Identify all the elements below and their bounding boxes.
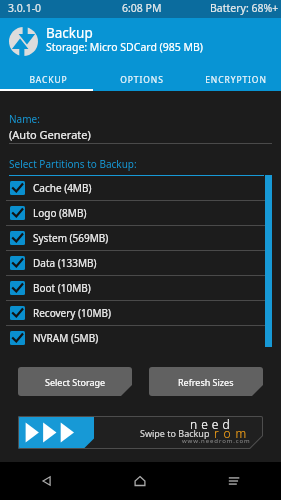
button[interactable]: Boot (10MB) bbox=[0, 276, 281, 301]
staticText: Storage: Micro SDCard (985 MB) bbox=[46, 40, 203, 54]
button[interactable]: ENCRYPTION bbox=[187, 68, 281, 91]
staticText: Logo (8MB) bbox=[33, 206, 87, 220]
button[interactable]: Swipe to Backup bbox=[18, 416, 263, 449]
staticText: Select Partitions to Backup: bbox=[9, 157, 137, 171]
staticText: OPTIONS bbox=[120, 74, 164, 86]
button[interactable]: Back bbox=[0, 462, 93, 500]
button[interactable]: Logo (8MB) bbox=[0, 201, 281, 226]
staticText: ENCRYPTION bbox=[205, 74, 267, 86]
button[interactable]: Home bbox=[93, 462, 187, 500]
staticText: Select Storage bbox=[45, 376, 106, 388]
button[interactable]: OPTIONS bbox=[93, 68, 187, 91]
button[interactable]: Cache (4MB) bbox=[0, 176, 281, 201]
staticText: BACKUP bbox=[29, 74, 68, 86]
button[interactable]: Recents bbox=[187, 462, 281, 500]
button[interactable]: Select Storage bbox=[18, 367, 132, 396]
staticText: Recovery (10MB) bbox=[33, 306, 112, 320]
button[interactable]: Recovery (10MB) bbox=[0, 301, 281, 326]
staticText: 6:08 PM bbox=[122, 1, 162, 15]
button[interactable]: Data (133MB) bbox=[0, 251, 281, 276]
staticText: Name: bbox=[9, 112, 40, 126]
staticText: rom bbox=[214, 425, 252, 441]
staticText: Data (133MB) bbox=[33, 256, 97, 270]
staticText: System (569MB) bbox=[33, 231, 109, 245]
staticText: Battery: 68%+ bbox=[210, 1, 279, 15]
button[interactable]: NVRAM (5MB) bbox=[0, 326, 281, 350]
staticText: Backup bbox=[46, 24, 93, 42]
button[interactable]: Refresh Sizes bbox=[149, 367, 263, 396]
staticText: NVRAM (5MB) bbox=[33, 331, 99, 345]
staticText: (Auto Generate) bbox=[9, 127, 91, 142]
staticText: Swipe to Backup bbox=[140, 427, 210, 439]
staticText: Cache (4MB) bbox=[33, 181, 92, 195]
staticText: Refresh Sizes bbox=[178, 376, 234, 388]
staticText: need bbox=[190, 416, 234, 432]
button[interactable]: BACKUP bbox=[0, 68, 93, 91]
staticText: 3.0.1-0 bbox=[8, 1, 42, 15]
staticText: Boot (10MB) bbox=[33, 281, 91, 295]
staticText: www.needrom.com bbox=[182, 437, 251, 445]
button[interactable]: System (569MB) bbox=[0, 226, 281, 251]
